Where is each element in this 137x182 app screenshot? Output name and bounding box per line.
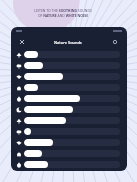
button[interactable] [13,104,120,115]
button[interactable] [13,82,120,93]
staticText: Nature Sounds [54,40,82,45]
button[interactable] [13,49,120,60]
button[interactable] [13,148,120,159]
button[interactable]: Sleep timer [109,36,121,48]
button[interactable] [13,60,120,71]
button[interactable] [13,115,120,126]
button[interactable] [13,71,120,82]
button[interactable]: Close [16,36,28,48]
button[interactable] [13,93,120,104]
button[interactable] [13,159,120,170]
button[interactable] [13,126,120,137]
button[interactable] [13,137,120,148]
staticText: LISTEN TO THE SOOTHING SOUNDS OF NATURE … [34,8,92,18]
